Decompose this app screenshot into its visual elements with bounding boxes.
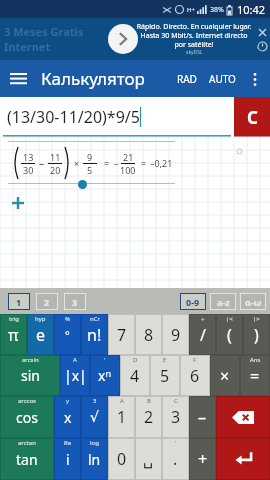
staticText: 10:42 (237, 2, 266, 17)
button[interactable]: ' (162, 438, 189, 480)
staticText: . (173, 448, 178, 470)
staticText: a-z (217, 296, 230, 308)
button[interactable]: (13/30-11/20)*9/5 (0, 97, 234, 137)
button[interactable]: y (54, 396, 81, 438)
staticText: 8 (144, 324, 154, 346)
staticText: 1 (16, 296, 22, 308)
staticText: + (198, 448, 208, 470)
button[interactable]: trig (0, 314, 27, 355)
staticText: x (64, 408, 72, 427)
button[interactable]: a-z (210, 293, 236, 310)
button[interactable]: hyp (27, 314, 54, 355)
button[interactable]: AUTO (203, 66, 242, 92)
button[interactable]: 3 Meses Gratis (0, 18, 270, 60)
staticText: |x| (64, 366, 87, 385)
button[interactable]: ' (90, 355, 120, 396)
staticText: ␣ (143, 450, 154, 469)
button[interactable]: log (81, 438, 108, 480)
button[interactable]: Close ad (257, 27, 268, 38)
button[interactable]: RAD (171, 66, 203, 92)
button[interactable]: 7 (108, 314, 135, 355)
staticText: skyDSL (186, 49, 203, 56)
button[interactable]: 0 (108, 438, 135, 480)
button[interactable]: 3 (81, 396, 108, 438)
button[interactable]: ÷ (189, 314, 216, 355)
button[interactable]: Ans (240, 355, 270, 396)
staticText: ) (254, 324, 259, 346)
staticText: 13 (23, 151, 34, 163)
staticText: – (198, 406, 207, 428)
button[interactable]: |> (243, 314, 270, 355)
button[interactable]: D (120, 355, 150, 396)
button[interactable]: C (162, 396, 189, 438)
button[interactable]: Menu (0, 60, 37, 97)
staticText: y (66, 397, 70, 405)
button[interactable]: C (234, 97, 270, 137)
staticText: cos (16, 408, 38, 427)
staticText: 0-9 (186, 296, 200, 308)
staticText: Калькулятор (41, 67, 145, 90)
staticText: 21 (123, 151, 134, 163)
staticText: n! (87, 324, 102, 346)
button[interactable]: B (135, 396, 162, 438)
staticText: e (36, 324, 46, 346)
staticText: 7 (117, 324, 127, 346)
button[interactable]: 1 (8, 293, 30, 310)
button[interactable]: A (60, 355, 90, 396)
button[interactable]: Add line (10, 195, 26, 211)
button[interactable]: Re (54, 438, 81, 480)
button[interactable]: – (189, 396, 216, 438)
staticText: hyp (35, 315, 46, 323)
staticText: sin (21, 366, 40, 385)
staticText: D (133, 356, 138, 364)
staticText: – (39, 156, 44, 170)
button[interactable]: Enter (216, 438, 270, 480)
staticText: 5 (160, 365, 170, 387)
staticText: 0 (117, 448, 127, 470)
staticText: % (65, 315, 70, 323)
staticText: ( (227, 324, 232, 346)
staticText: 2 (44, 296, 50, 308)
button[interactable]: 8 (135, 314, 162, 355)
staticText: ° (65, 327, 70, 342)
staticText: × (220, 365, 230, 387)
button[interactable]: arctan (0, 438, 54, 480)
button[interactable]: Ad info (257, 41, 268, 52)
button[interactable]: |< (216, 314, 243, 355)
button[interactable]: E (150, 355, 180, 396)
staticText: C (174, 397, 178, 405)
staticText: tan (16, 450, 38, 469)
button[interactable]: ␣ (135, 438, 162, 480)
button[interactable]: 0-9 (180, 293, 206, 310)
button[interactable]: arccos (0, 396, 54, 438)
staticText: ' (104, 356, 106, 364)
button[interactable]: 9 (162, 314, 189, 355)
button[interactable]: 2 (36, 293, 58, 310)
button[interactable]: A (108, 396, 135, 438)
button[interactable]: + (189, 438, 216, 480)
button[interactable]: 3 (64, 293, 86, 310)
button[interactable]: Backspace (216, 396, 270, 438)
button[interactable]: arcsin (0, 355, 60, 396)
button[interactable]: F (180, 355, 210, 396)
staticText: |< (226, 315, 233, 323)
staticText: ÷ (201, 315, 205, 323)
staticText: ' (175, 439, 177, 447)
staticText: trig (9, 315, 19, 323)
staticText: = (250, 365, 260, 387)
button[interactable]: % (54, 314, 81, 355)
button[interactable]: More options (242, 66, 268, 92)
staticText: –0,21 (150, 157, 173, 169)
staticText: π (8, 324, 19, 346)
button[interactable]: × (210, 355, 240, 396)
staticText: i (66, 450, 70, 469)
staticText: H+ (187, 6, 195, 14)
staticText: = (104, 157, 110, 169)
staticText: |> (253, 315, 260, 323)
button[interactable]: nCr (81, 314, 108, 355)
staticText: 5 (87, 164, 93, 176)
staticText: 9 (171, 324, 181, 346)
button[interactable]: α-ω (240, 293, 266, 310)
staticText: 100 (120, 164, 136, 176)
staticText: arcsin (22, 356, 39, 364)
